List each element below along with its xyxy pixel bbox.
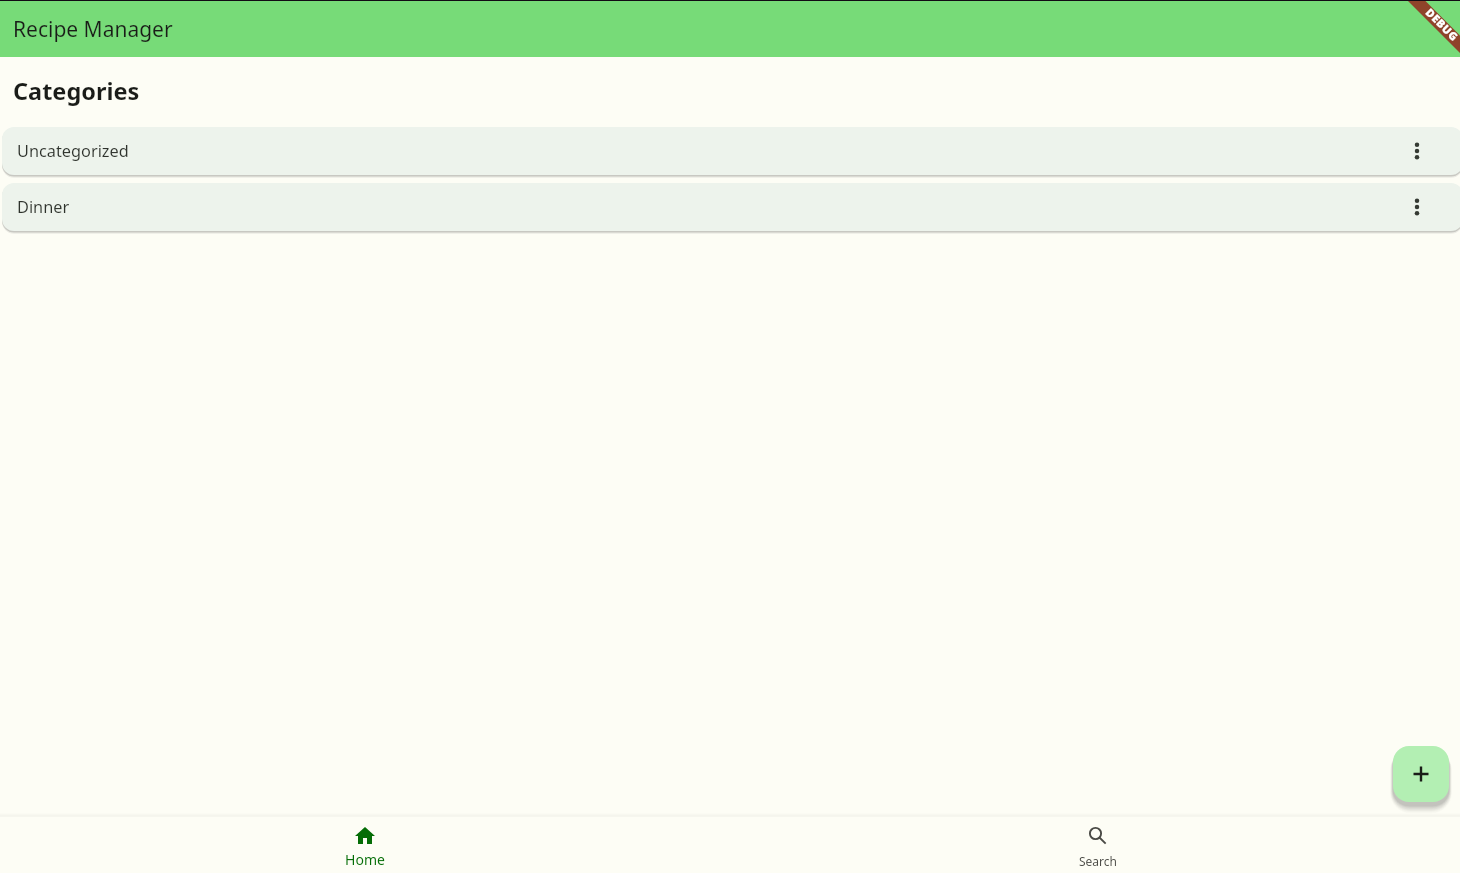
button[interactable]: Home — [0, 817, 730, 873]
staticText: Home — [345, 850, 385, 869]
staticText: Recipe Manager — [13, 15, 173, 44]
staticText: Search — [1079, 853, 1117, 869]
staticText: Categories — [13, 75, 140, 107]
button[interactable]: More options — [1397, 131, 1437, 171]
staticText: Uncategorized — [17, 140, 129, 162]
button[interactable]: Uncategorized — [2, 127, 1460, 175]
button[interactable]: More options — [1397, 187, 1437, 227]
button[interactable]: Search — [730, 817, 1460, 873]
button[interactable]: Add category — [1393, 746, 1449, 802]
staticText: Dinner — [17, 196, 70, 218]
button[interactable]: Dinner — [2, 183, 1460, 231]
staticText: DEBUG — [1423, 5, 1460, 44]
